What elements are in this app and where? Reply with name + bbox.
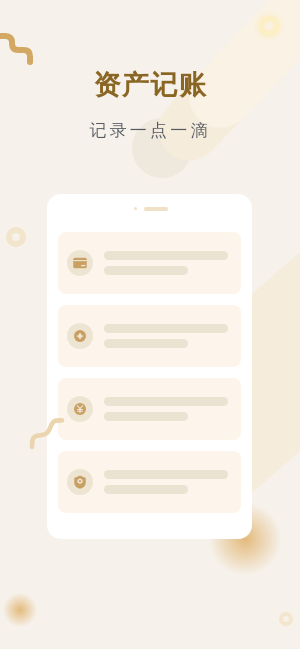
button[interactable]: Bank card xyxy=(58,232,241,294)
button[interactable]: Security xyxy=(58,451,241,513)
button[interactable]: Assets xyxy=(58,305,241,367)
button[interactable]: Currency xyxy=(58,378,241,440)
staticText: 资产记账 xyxy=(93,68,208,102)
staticText: 记录一点一滴 xyxy=(89,120,211,141)
